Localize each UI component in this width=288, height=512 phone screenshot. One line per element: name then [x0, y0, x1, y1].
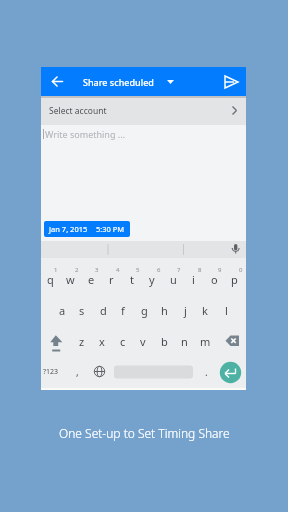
staticText: g [141, 303, 148, 318]
button[interactable]: k [195, 300, 215, 320]
button[interactable]: t [122, 269, 142, 289]
button[interactable]: 1 [46, 260, 66, 280]
staticText: r [109, 272, 114, 287]
staticText: o [211, 272, 218, 287]
button[interactable]: f [113, 300, 133, 320]
staticText: a [59, 303, 66, 318]
staticText: j [184, 303, 187, 318]
staticText: Select account [49, 105, 107, 117]
button[interactable]: y [142, 269, 162, 289]
button[interactable]: 7 [169, 260, 189, 280]
staticText: 4 [116, 266, 120, 274]
staticText: p [231, 272, 238, 287]
staticText: b [161, 334, 168, 349]
button[interactable] [219, 361, 241, 383]
staticText: w [66, 272, 75, 287]
button[interactable] [49, 72, 66, 91]
button[interactable]: w [60, 269, 80, 289]
button[interactable]: h [154, 300, 174, 320]
button[interactable]: Jan 7, 2015 [44, 221, 130, 237]
button[interactable]: m [195, 331, 215, 351]
staticText: 5:30 PM [96, 224, 125, 234]
staticText: Share scheduled [83, 76, 154, 88]
staticText: . [205, 365, 208, 379]
button[interactable] [222, 331, 242, 349]
button[interactable]: n [174, 331, 194, 351]
staticText: One Set-up to Set Timing Share [59, 425, 230, 441]
button[interactable]: e [81, 269, 101, 289]
button[interactable]: p [224, 269, 244, 289]
button[interactable]: Share scheduled [41, 67, 246, 96]
staticText: i [192, 272, 195, 287]
staticText: 6 [157, 266, 161, 274]
staticText: s [79, 303, 85, 318]
staticText: 8 [198, 266, 202, 274]
staticText: 0 [239, 266, 243, 274]
button[interactable]: , [67, 362, 87, 382]
button[interactable]: z [72, 331, 92, 351]
button[interactable]: g [134, 300, 154, 320]
staticText: Jan 7, 2015 [49, 224, 88, 234]
staticText: k [202, 303, 208, 318]
staticText: 1 [54, 266, 58, 274]
staticText: 5 [136, 266, 140, 274]
staticText: 2 [75, 266, 79, 274]
staticText: x [99, 334, 105, 349]
staticText: 7 [177, 266, 181, 274]
staticText: h [161, 303, 168, 318]
staticText: t [130, 272, 134, 287]
staticText: v [140, 334, 146, 349]
button[interactable]: 5 [128, 260, 148, 280]
button[interactable] [219, 71, 241, 93]
button[interactable]: . [196, 362, 216, 382]
button[interactable]: r [101, 269, 121, 289]
staticText: u [170, 272, 177, 287]
button[interactable]: d [93, 300, 113, 320]
button[interactable] [227, 240, 245, 258]
staticText: e [88, 272, 95, 287]
button[interactable]: 3 [87, 260, 107, 280]
staticText: m [200, 334, 211, 349]
staticText: ?123 [43, 367, 59, 377]
staticText: z [79, 334, 85, 349]
button[interactable]: l [216, 300, 236, 320]
button[interactable]: j [175, 300, 195, 320]
staticText: y [149, 272, 155, 287]
staticText: q [47, 272, 54, 287]
staticText: f [121, 303, 125, 318]
button[interactable]: 0 [231, 260, 251, 280]
button[interactable] [90, 362, 109, 381]
staticText: 3 [95, 266, 99, 274]
button[interactable]: 9 [210, 260, 230, 280]
button[interactable]: 6 [149, 260, 169, 280]
button[interactable]: 8 [190, 260, 210, 280]
button[interactable]: 4 [108, 260, 128, 280]
button[interactable]: 2 [67, 260, 87, 280]
staticText: n [181, 334, 188, 349]
staticText: c [120, 334, 126, 349]
button[interactable]: a [52, 300, 72, 320]
button[interactable]: v [133, 331, 153, 351]
staticText: , [76, 365, 79, 379]
staticText: l [225, 303, 228, 318]
button[interactable]: x [92, 331, 112, 351]
button[interactable]: c [113, 331, 133, 351]
button[interactable]: i [183, 269, 203, 289]
button[interactable] [114, 365, 193, 379]
button[interactable]: Select account [41, 96, 246, 125]
staticText: d [100, 303, 107, 318]
button[interactable]: o [204, 269, 224, 289]
staticText: Write something ... [45, 128, 126, 140]
button[interactable]: s [72, 300, 92, 320]
button[interactable]: ?123 [41, 362, 61, 382]
button[interactable]: b [154, 331, 174, 351]
button[interactable]: u [163, 269, 183, 289]
button[interactable]: q [40, 269, 60, 289]
button[interactable] [46, 331, 66, 352]
staticText: 9 [218, 266, 222, 274]
